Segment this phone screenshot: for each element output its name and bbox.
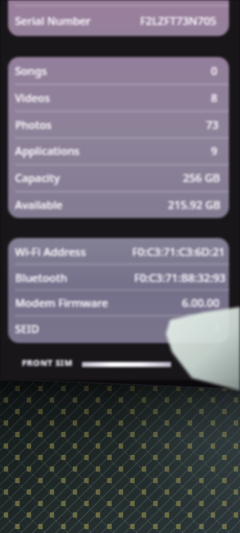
button[interactable]: Videos (8, 84, 229, 111)
button[interactable]: Wi-Fi Address (8, 238, 229, 264)
staticText: Modem Firmware (15, 295, 108, 310)
staticText: Available (15, 197, 63, 212)
button[interactable]: Applications (8, 137, 229, 164)
staticText: Wi-Fi Address (15, 244, 86, 259)
staticText: SEID (15, 321, 40, 336)
staticText: FRONT SIM (22, 357, 73, 369)
staticText: 215.92 GB (168, 197, 221, 212)
staticText: 256 GB (183, 170, 220, 185)
staticText: F0:C3:71:B8:32:93 (134, 270, 226, 285)
staticText: 0 (211, 63, 218, 78)
staticText: Videos (15, 90, 50, 105)
staticText: Serial Number (15, 13, 91, 28)
button[interactable]: Photos (8, 111, 229, 138)
button[interactable]: Modem Firmware (8, 289, 229, 315)
staticText: F0:C3:71:C3:6D:21 (132, 244, 226, 259)
button[interactable]: Available (8, 191, 229, 218)
staticText: Applications (15, 143, 80, 158)
staticText: 73 (206, 117, 219, 132)
staticText: 6.00.00 (182, 295, 220, 310)
staticText: F2LZFT73N705 (140, 13, 217, 28)
button[interactable]: Serial Number (8, 5, 229, 36)
button[interactable]: Bluetooth (8, 264, 229, 290)
staticText: Bluetooth (15, 270, 68, 285)
staticText: Songs (15, 63, 47, 78)
button[interactable]: SEID (8, 315, 229, 341)
staticText: 8 (211, 90, 218, 105)
staticText: 9 (211, 143, 218, 158)
button[interactable]: Capacity (8, 164, 229, 191)
button[interactable]: Songs (8, 57, 229, 84)
staticText: Capacity (15, 170, 60, 185)
staticText: Photos (15, 117, 52, 132)
